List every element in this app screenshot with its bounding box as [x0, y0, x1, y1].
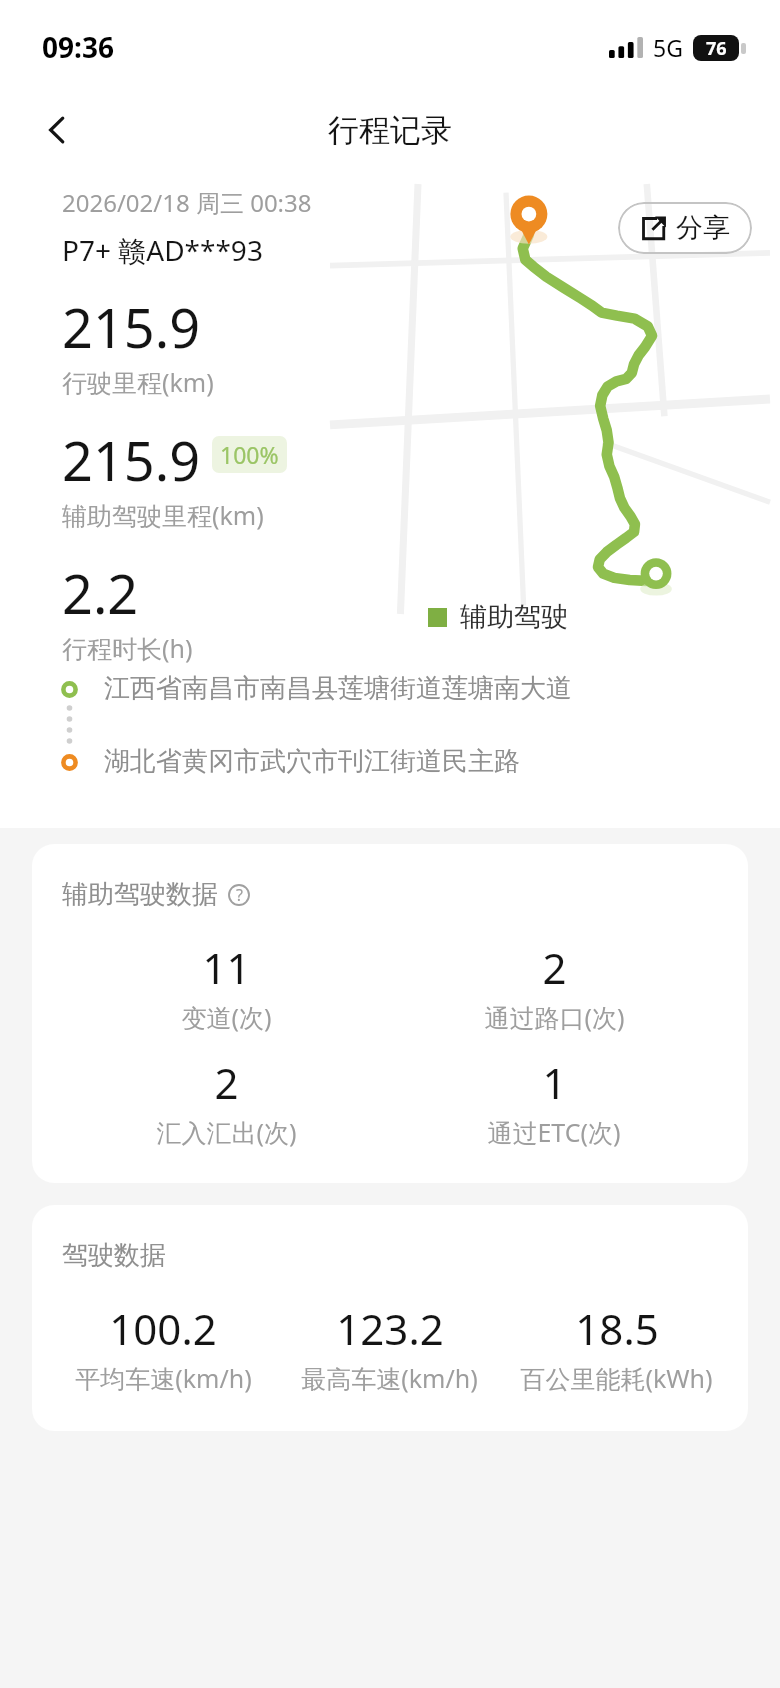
staticText: 驾驶数据	[62, 1239, 166, 1272]
staticText: 分享	[676, 211, 730, 245]
staticText: 09:36	[42, 28, 114, 66]
staticText: 11	[202, 939, 251, 996]
staticText: 行程时长(h)	[62, 631, 193, 665]
staticText: 215.9	[62, 423, 201, 497]
staticText: 江西省南昌市南昌县莲塘街道莲塘南大道	[104, 672, 572, 705]
staticText: 通过路口(次)	[484, 1000, 625, 1034]
staticText: 汇入汇出(次)	[156, 1115, 297, 1149]
button[interactable]: Info	[225, 881, 253, 909]
staticText: 湖北省黄冈市武穴市刊江街道民主路	[104, 745, 520, 778]
staticText: 辅助驾驶数据	[62, 878, 218, 911]
staticText: 辅助驾驶	[460, 600, 568, 634]
button[interactable]: 分享	[618, 202, 752, 254]
staticText: 100%	[220, 439, 279, 470]
staticText: 2.2	[62, 556, 139, 630]
staticText: 18.5	[575, 1300, 659, 1357]
staticText: 2	[214, 1054, 239, 1111]
staticText: 最高车速(km/h)	[301, 1361, 478, 1395]
staticText: 5G	[653, 32, 683, 63]
staticText: 行程记录	[328, 111, 452, 150]
staticText: ?	[236, 884, 243, 906]
staticText: 辅助驾驶里程(km)	[62, 498, 264, 532]
staticText: 通过ETC(次)	[487, 1115, 621, 1149]
staticText: 123.2	[336, 1300, 444, 1357]
staticText: 76	[706, 36, 727, 61]
staticText: 2026/02/18 周三 00:38	[62, 186, 312, 219]
staticText: P7+ 赣AD***93	[62, 231, 263, 269]
staticText: 百公里能耗(kWh)	[520, 1361, 713, 1395]
staticText: 2	[542, 939, 567, 996]
staticText: 1	[542, 1054, 567, 1111]
staticText: 行驶里程(km)	[62, 365, 214, 399]
staticText: 100.2	[109, 1300, 217, 1357]
staticText: 215.9	[62, 290, 201, 364]
staticText: 平均车速(km/h)	[75, 1361, 252, 1395]
button[interactable]: Back	[28, 101, 86, 159]
staticText: 变道(次)	[181, 1000, 272, 1034]
